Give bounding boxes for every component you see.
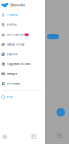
button[interactable]: Notifications xyxy=(0,30,45,40)
staticText: Suggested Follows xyxy=(7,63,30,66)
button[interactable]: Suggested Follows xyxy=(0,59,45,69)
staticText: Bookmarks xyxy=(7,82,20,85)
button[interactable]: Scan QR code xyxy=(32,135,36,139)
button[interactable]: Blue xyxy=(0,92,45,102)
button[interactable]: Timeline xyxy=(0,10,45,20)
button[interactable]: Muting Voices xyxy=(0,40,45,49)
staticText: Explore xyxy=(7,53,17,56)
button[interactable]: Compose xyxy=(56,108,65,117)
staticText: Notifications xyxy=(7,33,23,36)
staticText: Muting Voices xyxy=(7,43,24,46)
button[interactable]: Messages xyxy=(0,69,45,79)
button[interactable]: Settings xyxy=(2,135,7,139)
button[interactable]: Bookmarks xyxy=(0,79,45,89)
staticText: Blue xyxy=(7,96,12,99)
staticText: Timeline xyxy=(7,14,17,17)
button[interactable]: Follow xyxy=(47,34,59,39)
button[interactable]: Explore xyxy=(0,49,45,59)
staticText: Openvibe xyxy=(10,3,25,7)
button[interactable]: Profile xyxy=(0,20,45,30)
staticText: Profile xyxy=(7,23,16,26)
staticText: Messages xyxy=(7,72,17,75)
